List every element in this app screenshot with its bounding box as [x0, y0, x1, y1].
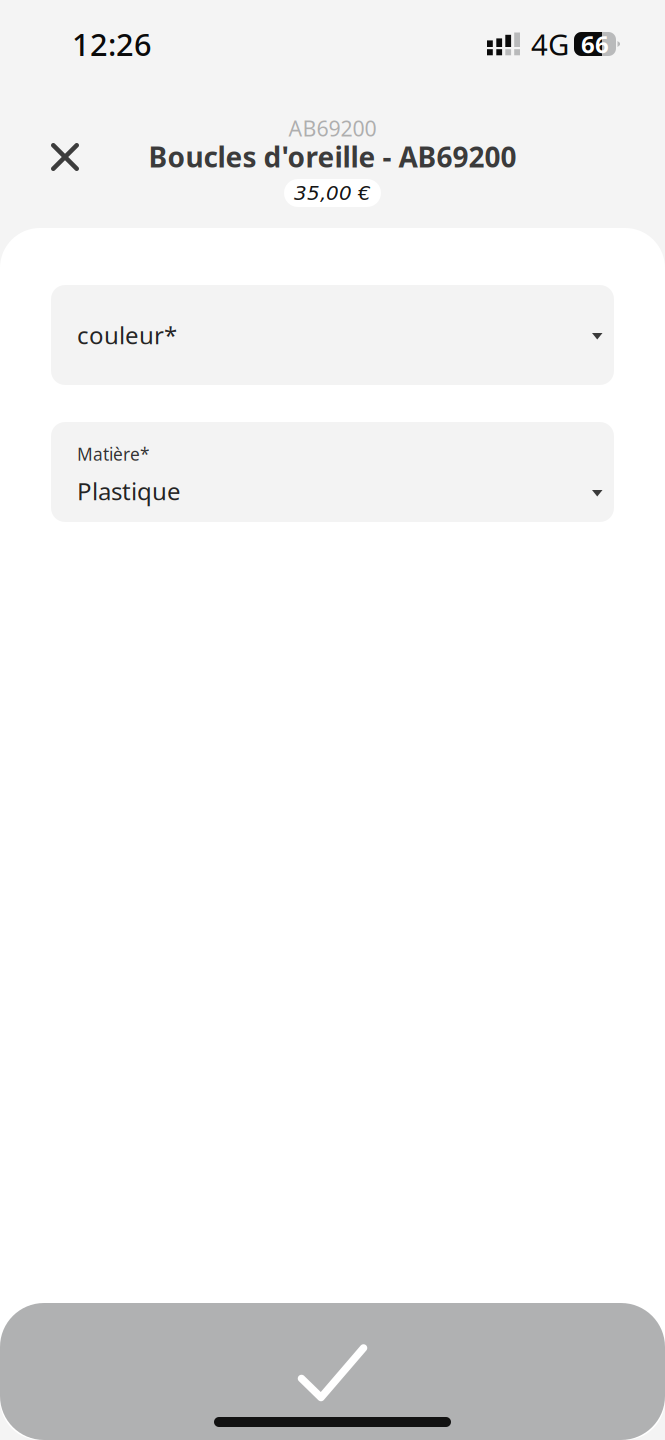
staticText: Boucles d'oreille - AB69200 — [148, 138, 516, 175]
button[interactable]: Valider — [0, 1303, 665, 1440]
staticText: AB69200 — [288, 114, 376, 142]
staticText: 12:26 — [72, 24, 152, 64]
staticText: 35,00 € — [294, 181, 371, 205]
staticText: Plastique — [77, 475, 181, 507]
staticText: Matière* — [77, 442, 150, 465]
button[interactable]: couleur* — [51, 285, 614, 385]
staticText: couleur* — [77, 319, 177, 351]
button[interactable]: Fermer — [38, 130, 92, 184]
staticText: 4G — [531, 24, 569, 63]
staticText: 66 — [581, 28, 609, 60]
button[interactable]: Matière* — [51, 422, 614, 522]
